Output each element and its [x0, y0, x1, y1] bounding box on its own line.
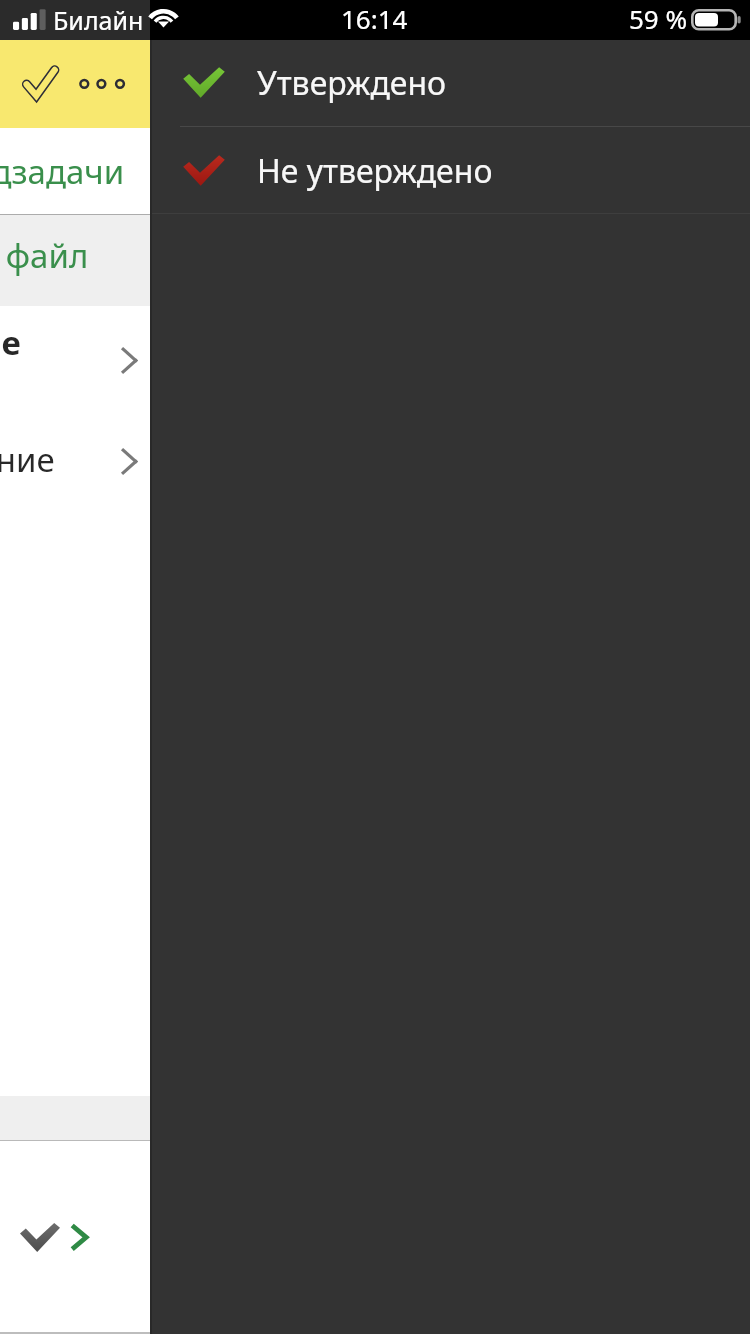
button[interactable] — [0, 128, 750, 213]
button[interactable] — [0, 307, 750, 402]
button[interactable] — [0, 214, 750, 306]
staticText: Состояние — [0, 320, 21, 365]
staticText: Билайн — [53, 3, 144, 37]
staticText: Не утверждено — [257, 149, 493, 193]
staticText: 16:14 — [341, 1, 408, 36]
staticText: Подразделение — [0, 437, 55, 482]
button[interactable]: Далее — [62, 1200, 106, 1276]
button[interactable]: Ещё — [68, 50, 136, 118]
staticText: 59 % — [629, 1, 688, 36]
button[interactable]: Не утверждено — [150, 127, 750, 213]
button[interactable]: Выполнено — [0, 1200, 72, 1276]
staticText: Добавить файл — [0, 233, 89, 278]
button[interactable] — [0, 402, 750, 497]
button[interactable]: Утверждено — [150, 40, 750, 126]
button[interactable] — [0, 40, 750, 128]
button[interactable]: Сохранить — [0, 52, 74, 118]
staticText: Подзадачи — [0, 149, 125, 194]
staticText: Утверждено — [257, 61, 447, 105]
